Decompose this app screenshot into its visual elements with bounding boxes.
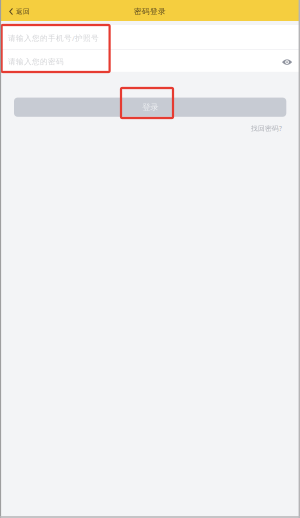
- button[interactable]: 请输入您的密码: [0, 50, 276, 72]
- button[interactable]: 返回: [0, 0, 38, 21]
- staticText: 请输入您的手机号/护照号: [8, 33, 99, 43]
- button[interactable]: Show password: [276, 50, 300, 72]
- staticText: 登录: [142, 102, 158, 112]
- staticText: 找回密码?: [251, 124, 282, 133]
- button[interactable]: 请输入您的手机号/护照号: [0, 25, 300, 49]
- staticText: 密码登录: [134, 7, 166, 16]
- button[interactable]: 找回密码?: [245, 117, 300, 136]
- staticText: 请输入您的密码: [8, 57, 64, 67]
- button[interactable]: 登录: [14, 98, 286, 117]
- staticText: 返回: [16, 7, 30, 16]
